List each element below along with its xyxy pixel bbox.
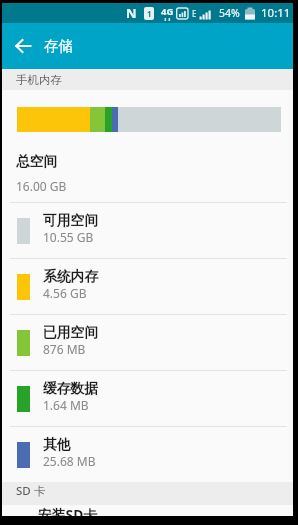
button[interactable]: 可用空间 (2, 203, 293, 258)
staticText: 16.00 GB (16, 178, 67, 194)
staticText: 25.68 MB (43, 453, 96, 469)
button[interactable]: 安装SD卡 (2, 505, 293, 516)
button[interactable]: 系统内存 (2, 259, 293, 314)
button[interactable] (2, 23, 44, 69)
staticText: 安装SD卡 (38, 505, 98, 516)
staticText: 4.56 GB (43, 285, 87, 301)
staticText: 10.55 GB (43, 229, 94, 245)
staticText: 1 (147, 8, 152, 19)
staticText: 54% (219, 6, 240, 20)
staticText: 系统内存 (43, 268, 99, 285)
staticText: N (126, 4, 137, 22)
staticText: SD 卡 (16, 483, 46, 499)
staticText: 876 MB (43, 341, 86, 357)
staticText: 存储 (44, 37, 73, 55)
staticText: 其他 (43, 436, 71, 453)
staticText: 10:11 (261, 5, 291, 21)
staticText: 已用空间 (43, 324, 99, 341)
button[interactable]: 总空间 (2, 150, 293, 202)
staticText: 可用空间 (43, 212, 99, 229)
staticText: 4G (161, 5, 174, 18)
staticText: 缓存数据 (43, 380, 99, 397)
staticText: 1.64 MB (43, 397, 89, 413)
button[interactable]: 其他 (2, 427, 293, 482)
button[interactable]: 已用空间 (2, 315, 293, 370)
staticText: 总空间 (16, 153, 58, 170)
staticText: E (192, 8, 197, 19)
staticText: 手机内存 (16, 73, 62, 87)
button[interactable]: 缓存数据 (2, 371, 293, 426)
